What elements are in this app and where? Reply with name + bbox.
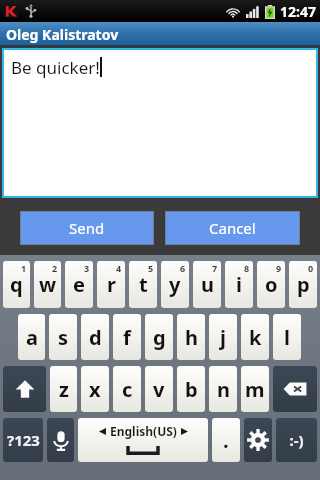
- staticText: j: [220, 324, 226, 351]
- staticText: v: [153, 376, 165, 403]
- staticText: k: [249, 324, 262, 351]
- button[interactable]: k: [241, 314, 269, 360]
- staticText: e: [73, 271, 85, 298]
- staticText: i: [236, 271, 242, 298]
- staticText: 3: [84, 262, 90, 274]
- staticText: h: [185, 324, 198, 351]
- button[interactable]: Settings: [244, 418, 272, 462]
- staticText: w: [39, 271, 57, 298]
- button[interactable]: ?123: [3, 418, 43, 462]
- button[interactable]: f: [113, 314, 141, 360]
- button[interactable]: x: [81, 366, 109, 412]
- staticText: 6: [180, 262, 186, 274]
- staticText: f: [123, 324, 131, 351]
- button[interactable]: l: [273, 314, 301, 360]
- staticText: 7: [212, 262, 218, 274]
- button[interactable]: u: [193, 261, 221, 308]
- button[interactable]: o: [257, 261, 285, 308]
- staticText: 8: [244, 262, 250, 274]
- staticText: n: [217, 376, 230, 403]
- button[interactable]: e: [65, 261, 93, 308]
- staticText: 5: [148, 262, 154, 274]
- staticText: :-): [289, 430, 304, 450]
- button[interactable]: q: [3, 261, 30, 308]
- button[interactable]: :-): [276, 418, 317, 462]
- staticText: English(US): [110, 423, 177, 439]
- staticText: c: [122, 376, 133, 403]
- button[interactable]: j: [209, 314, 237, 360]
- button[interactable]: b: [177, 366, 205, 412]
- staticText: Oleg Kalistratov: [6, 25, 119, 44]
- button[interactable]: n: [209, 366, 237, 412]
- button[interactable]: p: [289, 261, 317, 308]
- staticText: l: [284, 324, 290, 351]
- button[interactable]: Be quicker!: [2, 48, 318, 198]
- staticText: 2: [52, 262, 58, 274]
- button[interactable]: Space, English (US): [78, 418, 208, 462]
- staticText: q: [10, 271, 23, 298]
- staticText: 9: [276, 262, 282, 274]
- button[interactable]: Shift: [3, 366, 46, 412]
- staticText: Be quicker!: [11, 56, 100, 79]
- button[interactable]: v: [145, 366, 173, 412]
- staticText: 0: [308, 262, 314, 274]
- staticText: g: [153, 324, 166, 351]
- button[interactable]: m: [241, 366, 269, 412]
- button[interactable]: Voice input: [47, 418, 74, 462]
- staticText: s: [58, 324, 69, 351]
- button[interactable]: a: [18, 314, 45, 360]
- staticText: t: [139, 271, 148, 298]
- staticText: p: [297, 271, 310, 298]
- staticText: z: [59, 376, 69, 403]
- staticText: o: [265, 271, 278, 298]
- button[interactable]: Backspace: [273, 366, 317, 412]
- button[interactable]: Send: [21, 212, 153, 244]
- staticText: x: [89, 376, 101, 403]
- staticText: r: [107, 271, 116, 298]
- staticText: m: [245, 376, 265, 403]
- staticText: d: [89, 324, 102, 351]
- button[interactable]: i: [225, 261, 253, 308]
- staticText: 1: [21, 262, 27, 274]
- button[interactable]: w: [34, 261, 61, 308]
- staticText: y: [169, 271, 181, 298]
- staticText: b: [185, 376, 198, 403]
- button[interactable]: .: [212, 418, 240, 462]
- button[interactable]: d: [81, 314, 109, 360]
- staticText: 4: [116, 262, 122, 274]
- staticText: .: [223, 427, 229, 454]
- button[interactable]: t: [129, 261, 157, 308]
- button[interactable]: g: [145, 314, 173, 360]
- button[interactable]: c: [113, 366, 141, 412]
- button[interactable]: z: [50, 366, 77, 412]
- button[interactable]: s: [49, 314, 77, 360]
- button[interactable]: Cancel: [166, 212, 299, 244]
- button[interactable]: y: [161, 261, 189, 308]
- button[interactable]: r: [97, 261, 125, 308]
- staticText: a: [26, 324, 38, 351]
- staticText: ?123: [7, 430, 40, 450]
- staticText: u: [201, 271, 214, 298]
- staticText: Send: [69, 218, 105, 238]
- staticText: Cancel: [209, 218, 256, 238]
- button[interactable]: h: [177, 314, 205, 360]
- staticText: 12:47: [280, 2, 316, 21]
